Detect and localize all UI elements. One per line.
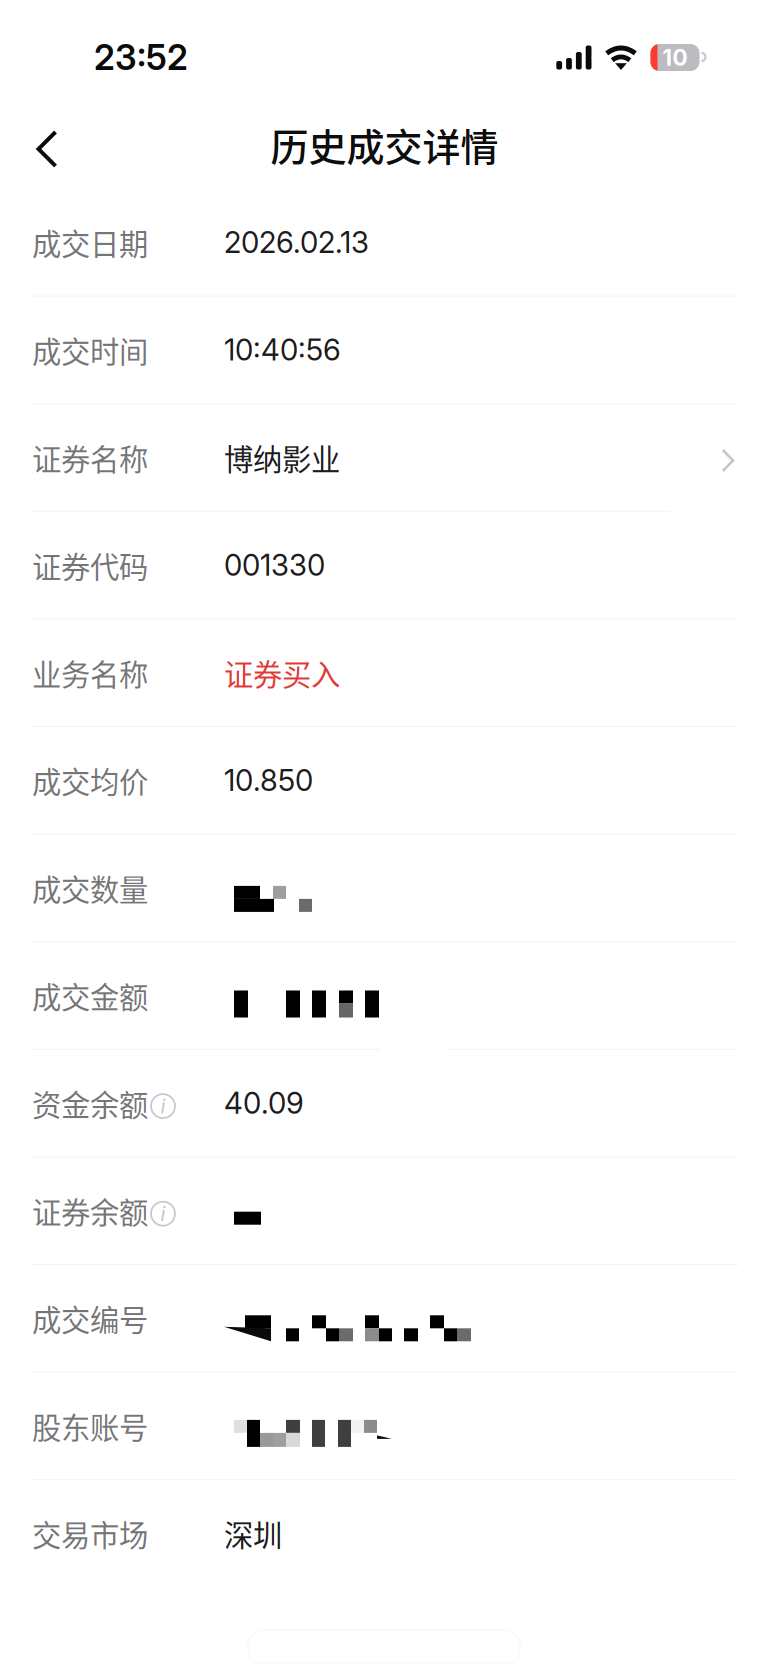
- staticText: 2026.02.13: [224, 225, 369, 260]
- staticText: 博纳影业: [224, 436, 340, 479]
- staticText: 股东账号: [32, 1405, 148, 1447]
- staticText: 证券余额: [32, 1189, 148, 1232]
- staticText: 业务名称: [32, 651, 148, 694]
- staticText: 10: [662, 44, 687, 71]
- staticText: 成交均价: [32, 759, 148, 802]
- staticText: 成交时间: [32, 329, 148, 371]
- staticText: 001330: [224, 547, 325, 583]
- staticText: 资金余额: [32, 1082, 148, 1124]
- staticText: 证券买入: [224, 651, 340, 694]
- staticText: 证券名称: [32, 436, 148, 479]
- staticText: i: [160, 1094, 165, 1118]
- staticText: 10.850: [224, 763, 313, 798]
- staticText: 交易市场: [32, 1512, 148, 1555]
- staticText: 成交日期: [32, 221, 148, 264]
- button[interactable]: 证券名称: [0, 404, 769, 512]
- staticText: 成交编号: [32, 1297, 148, 1340]
- button[interactable]: 返回: [7, 108, 87, 190]
- staticText: 证券代码: [32, 544, 148, 586]
- staticText: 10:40:56: [224, 332, 341, 368]
- staticText: 历史成交详情: [270, 117, 498, 172]
- staticText: i: [160, 1202, 165, 1226]
- staticText: 成交金额: [32, 974, 148, 1017]
- staticText: 深圳: [224, 1512, 282, 1555]
- staticText: 23:52: [94, 36, 188, 78]
- staticText: 40.09: [224, 1085, 304, 1121]
- staticText: 成交数量: [32, 867, 148, 909]
